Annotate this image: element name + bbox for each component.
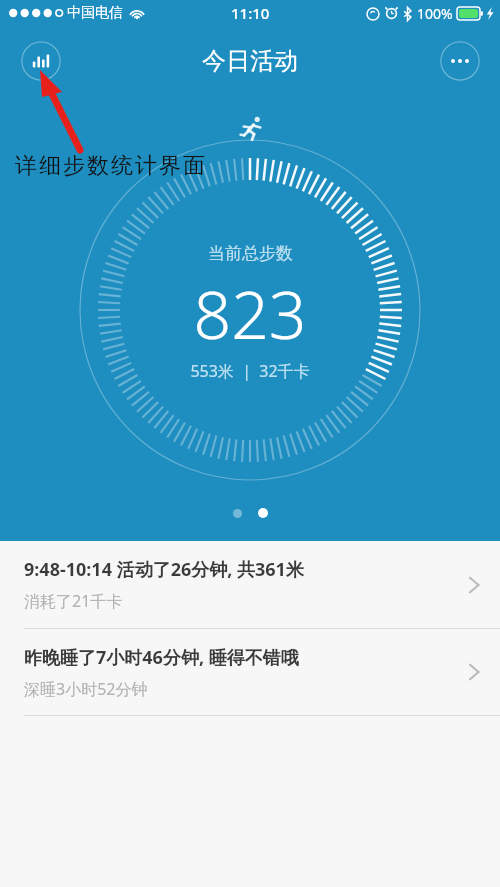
staticText: 11:10 bbox=[231, 3, 270, 23]
staticText: 深睡3小时52分钟 bbox=[24, 678, 148, 700]
staticText: 中国电信 bbox=[67, 4, 123, 22]
staticText: 当前总步数 bbox=[208, 243, 293, 264]
button[interactable] bbox=[233, 509, 242, 518]
staticText: 消耗了21千卡 bbox=[24, 590, 123, 612]
staticText: 553米 | 32千卡 bbox=[190, 360, 310, 382]
button[interactable]: 9:48-10:14 活动了26分钟, 共361米 bbox=[0, 541, 500, 628]
staticText: 昨晚睡了7小时46分钟, 睡得不错哦 bbox=[24, 645, 299, 670]
button[interactable]: 昨晚睡了7小时46分钟, 睡得不错哦 bbox=[0, 629, 500, 715]
staticText: 今日活动 bbox=[202, 46, 298, 76]
button[interactable]: 更多 bbox=[440, 41, 480, 81]
staticText: 100% bbox=[417, 4, 453, 23]
staticText: 详细步数统计界面 bbox=[14, 152, 206, 180]
button[interactable] bbox=[258, 508, 268, 518]
staticText: 823 bbox=[193, 268, 307, 358]
staticText: 9:48-10:14 活动了26分钟, 共361米 bbox=[24, 557, 304, 582]
button[interactable]: 步数统计 bbox=[21, 41, 61, 81]
